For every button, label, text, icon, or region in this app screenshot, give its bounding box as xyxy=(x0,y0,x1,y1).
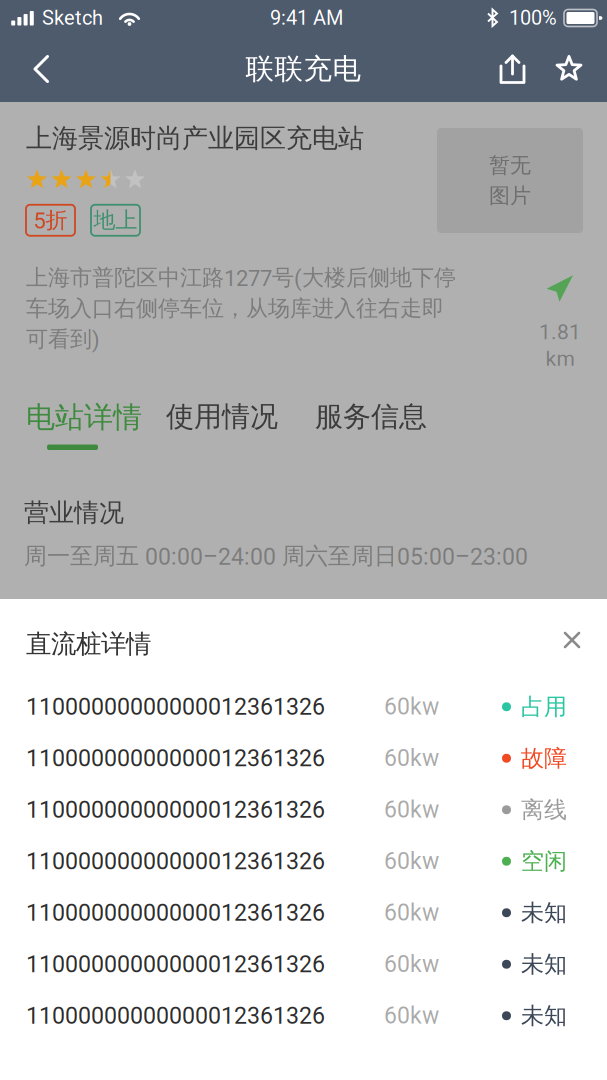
staticText: 11000000000000012361326 xyxy=(26,848,325,875)
staticText: 地上 xyxy=(93,206,137,234)
staticText: 60kw xyxy=(384,1002,439,1029)
staticText: 图片 xyxy=(489,182,531,209)
staticText: 周一至周五 00:00–24:00 周六至周日05:00–23:00 xyxy=(24,541,528,570)
staticText: km xyxy=(545,346,574,371)
button[interactable]: 11000000000000012361326 xyxy=(0,887,607,938)
staticText: 营业情况 xyxy=(24,497,124,528)
staticText: 11000000000000012361326 xyxy=(26,693,325,720)
staticText: 联联充电 xyxy=(245,51,361,87)
staticText: 直流桩详情 xyxy=(26,628,151,660)
staticText: 100% xyxy=(509,6,557,30)
staticText: 电站详情 xyxy=(26,399,142,435)
staticText: 上海市普陀区中江路1277号(大楼后侧地下停 车场入口右侧停车位，从场库进入往右… xyxy=(26,264,456,353)
staticText: 5折 xyxy=(33,206,67,234)
staticText: 暂无 xyxy=(489,152,531,178)
staticText: 未知 xyxy=(521,1001,567,1030)
button[interactable]: 11000000000000012361326 xyxy=(0,784,607,835)
staticText: 未知 xyxy=(521,950,567,979)
staticText: 60kw xyxy=(384,693,439,720)
staticText: 60kw xyxy=(384,796,439,823)
staticText: 上海景源时尚产业园区充电站 xyxy=(26,122,364,155)
staticText: 11000000000000012361326 xyxy=(26,745,325,772)
staticText: 1.81 xyxy=(539,320,581,344)
button[interactable]: Back xyxy=(0,36,82,102)
staticText: 60kw xyxy=(384,745,439,772)
staticText: 服务信息 xyxy=(315,399,427,434)
staticText: 离线 xyxy=(521,795,567,824)
staticText: 9:41 AM xyxy=(270,6,343,30)
staticText: 11000000000000012361326 xyxy=(26,796,325,823)
staticText: 11000000000000012361326 xyxy=(26,899,325,926)
staticText: 空闲 xyxy=(521,847,567,876)
button[interactable]: Close xyxy=(550,618,594,662)
staticText: Sketch xyxy=(42,6,103,30)
staticText: 占用 xyxy=(521,692,567,721)
button[interactable]: 11000000000000012361326 xyxy=(0,990,607,1041)
staticText: 11000000000000012361326 xyxy=(26,1002,325,1029)
button[interactable]: Share xyxy=(476,36,544,102)
staticText: 11000000000000012361326 xyxy=(26,951,325,978)
button[interactable]: 11000000000000012361326 xyxy=(0,732,607,784)
staticText: 故障 xyxy=(521,744,567,773)
staticText: 使用情况 xyxy=(166,399,278,434)
button[interactable]: 11000000000000012361326 xyxy=(0,938,607,990)
button[interactable]: 11000000000000012361326 xyxy=(0,681,607,732)
staticText: 60kw xyxy=(384,899,439,926)
button[interactable]: 11000000000000012361326 xyxy=(0,835,607,887)
staticText: 60kw xyxy=(384,848,439,875)
staticText: 未知 xyxy=(521,898,567,927)
button[interactable]: Favorite xyxy=(544,36,607,102)
staticText: 60kw xyxy=(384,951,439,978)
